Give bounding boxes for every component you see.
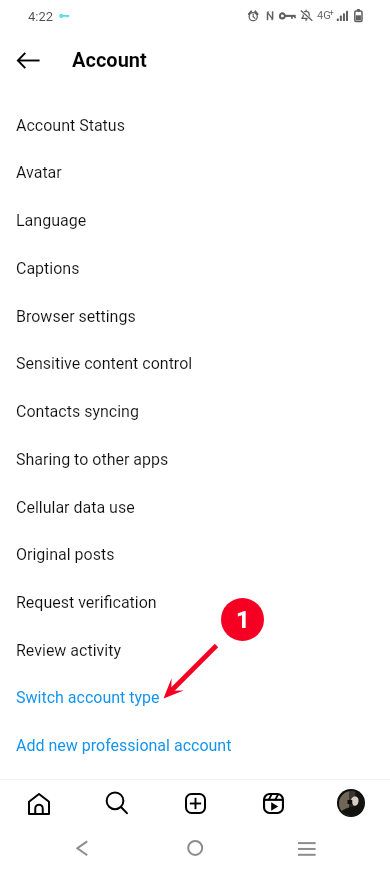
button[interactable]: Home xyxy=(0,780,78,826)
staticText: Cellular data use xyxy=(16,498,135,517)
staticText: Captions xyxy=(16,259,80,278)
button[interactable]: Step 1 xyxy=(221,598,264,641)
staticText: Language xyxy=(16,211,87,230)
staticText: Browser settings xyxy=(16,307,136,326)
staticText: Account xyxy=(72,48,147,71)
staticText: Contacts syncing xyxy=(16,402,139,421)
button[interactable]: Avatar xyxy=(0,148,390,196)
button[interactable]: Review activity xyxy=(0,626,390,674)
staticText: 4:22 xyxy=(28,9,54,24)
staticText: Switch account type xyxy=(16,688,160,707)
button[interactable]: Captions xyxy=(0,244,390,292)
button[interactable]: Browser settings xyxy=(0,292,390,340)
button[interactable]: Switch account type xyxy=(0,673,390,721)
button[interactable]: Back xyxy=(4,36,52,84)
button[interactable]: Create xyxy=(156,780,234,826)
staticText: Avatar xyxy=(16,163,62,182)
staticText: Sensitive content control xyxy=(16,354,193,373)
button[interactable]: Add new professional account xyxy=(0,721,390,769)
staticText: 4G xyxy=(317,9,331,22)
button[interactable]: Original posts xyxy=(0,530,390,578)
button[interactable]: Request verification xyxy=(0,578,390,626)
staticText: Sharing to other apps xyxy=(16,450,169,469)
staticText: 1 xyxy=(236,606,250,634)
staticText: Add new professional account xyxy=(16,736,232,755)
button[interactable]: Reels xyxy=(234,780,312,826)
button[interactable]: Language xyxy=(0,196,390,244)
staticText: Request verification xyxy=(16,593,157,612)
button[interactable]: Recent apps xyxy=(283,824,331,870)
button[interactable]: Sensitive content control xyxy=(0,339,390,387)
button[interactable]: Cellular data use xyxy=(0,483,390,531)
staticText: + xyxy=(329,8,334,18)
button[interactable]: Account Status xyxy=(0,101,390,149)
staticText: Account Status xyxy=(16,116,125,135)
button[interactable]: Sharing to other apps xyxy=(0,435,390,483)
button[interactable]: Profile xyxy=(312,780,390,826)
staticText: Original posts xyxy=(16,545,115,564)
staticText: Review activity xyxy=(16,641,122,660)
button[interactable]: Search xyxy=(78,780,156,826)
button[interactable]: Back xyxy=(58,824,106,870)
button[interactable]: Contacts syncing xyxy=(0,387,390,435)
button[interactable]: Home xyxy=(171,824,219,870)
